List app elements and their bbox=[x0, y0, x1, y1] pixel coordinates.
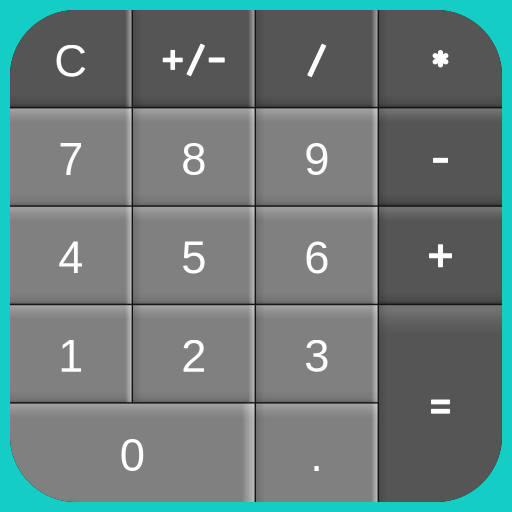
button[interactable]: 7 bbox=[10, 108, 131, 205]
button[interactable]: 5 bbox=[133, 207, 254, 304]
button[interactable]: * bbox=[379, 10, 502, 107]
button[interactable]: - bbox=[379, 108, 502, 205]
staticText: . bbox=[310, 430, 323, 481]
button[interactable]: 0 bbox=[10, 404, 254, 502]
staticText: 9 bbox=[304, 134, 329, 185]
staticText: 1 bbox=[58, 331, 83, 381]
staticText: 8 bbox=[181, 134, 206, 185]
button[interactable]: . bbox=[256, 404, 377, 502]
button[interactable]: 9 bbox=[256, 108, 377, 205]
button[interactable]: +/- bbox=[133, 10, 254, 107]
staticText: 3 bbox=[304, 331, 329, 381]
button[interactable]: 6 bbox=[256, 207, 377, 304]
button[interactable]: 4 bbox=[10, 207, 131, 304]
staticText: C bbox=[54, 36, 87, 86]
button[interactable]: = bbox=[379, 305, 502, 502]
button[interactable]: 2 bbox=[133, 305, 254, 402]
staticText: 0 bbox=[120, 430, 145, 481]
staticText: 5 bbox=[181, 232, 206, 283]
button[interactable]: / bbox=[256, 10, 377, 107]
staticText: 6 bbox=[304, 232, 329, 283]
button[interactable]: + bbox=[379, 207, 502, 304]
button[interactable]: 1 bbox=[10, 305, 131, 402]
button[interactable]: 8 bbox=[133, 108, 254, 205]
staticText: 7 bbox=[58, 134, 83, 185]
button[interactable]: C bbox=[10, 10, 131, 107]
staticText: 4 bbox=[58, 232, 83, 283]
button[interactable]: 3 bbox=[256, 305, 377, 402]
staticText: 2 bbox=[181, 331, 206, 381]
